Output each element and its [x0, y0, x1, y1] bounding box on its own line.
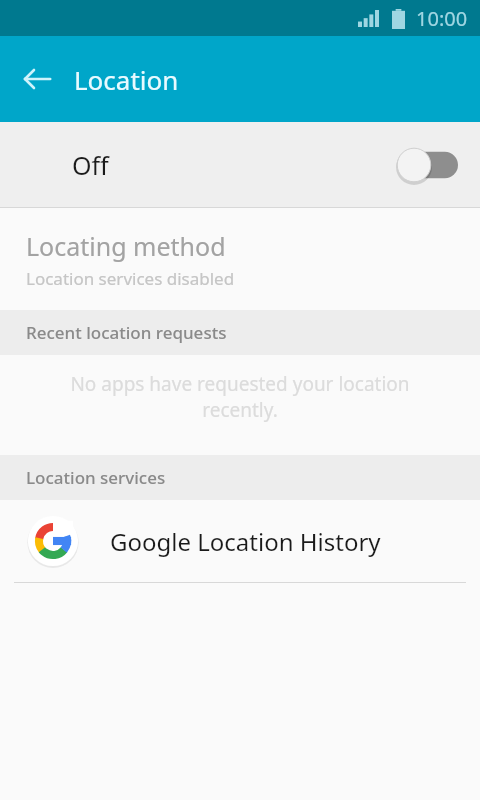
staticText: Off — [72, 148, 109, 182]
button[interactable]: Google Location History — [0, 500, 480, 582]
button[interactable]: Locating method — [0, 208, 480, 310]
staticText: No apps have requested your location rec… — [56, 371, 424, 422]
button[interactable]: Back — [10, 52, 64, 106]
staticText: 10:00 — [416, 5, 468, 32]
staticText: Google Location History — [110, 525, 381, 558]
button[interactable]: Off — [0, 122, 480, 207]
staticText: Locating method — [26, 229, 226, 263]
staticText: Location — [74, 62, 179, 97]
staticText: Recent location requests — [26, 321, 227, 344]
staticText: Location services — [26, 466, 166, 489]
staticText: Location services disabled — [26, 267, 235, 290]
